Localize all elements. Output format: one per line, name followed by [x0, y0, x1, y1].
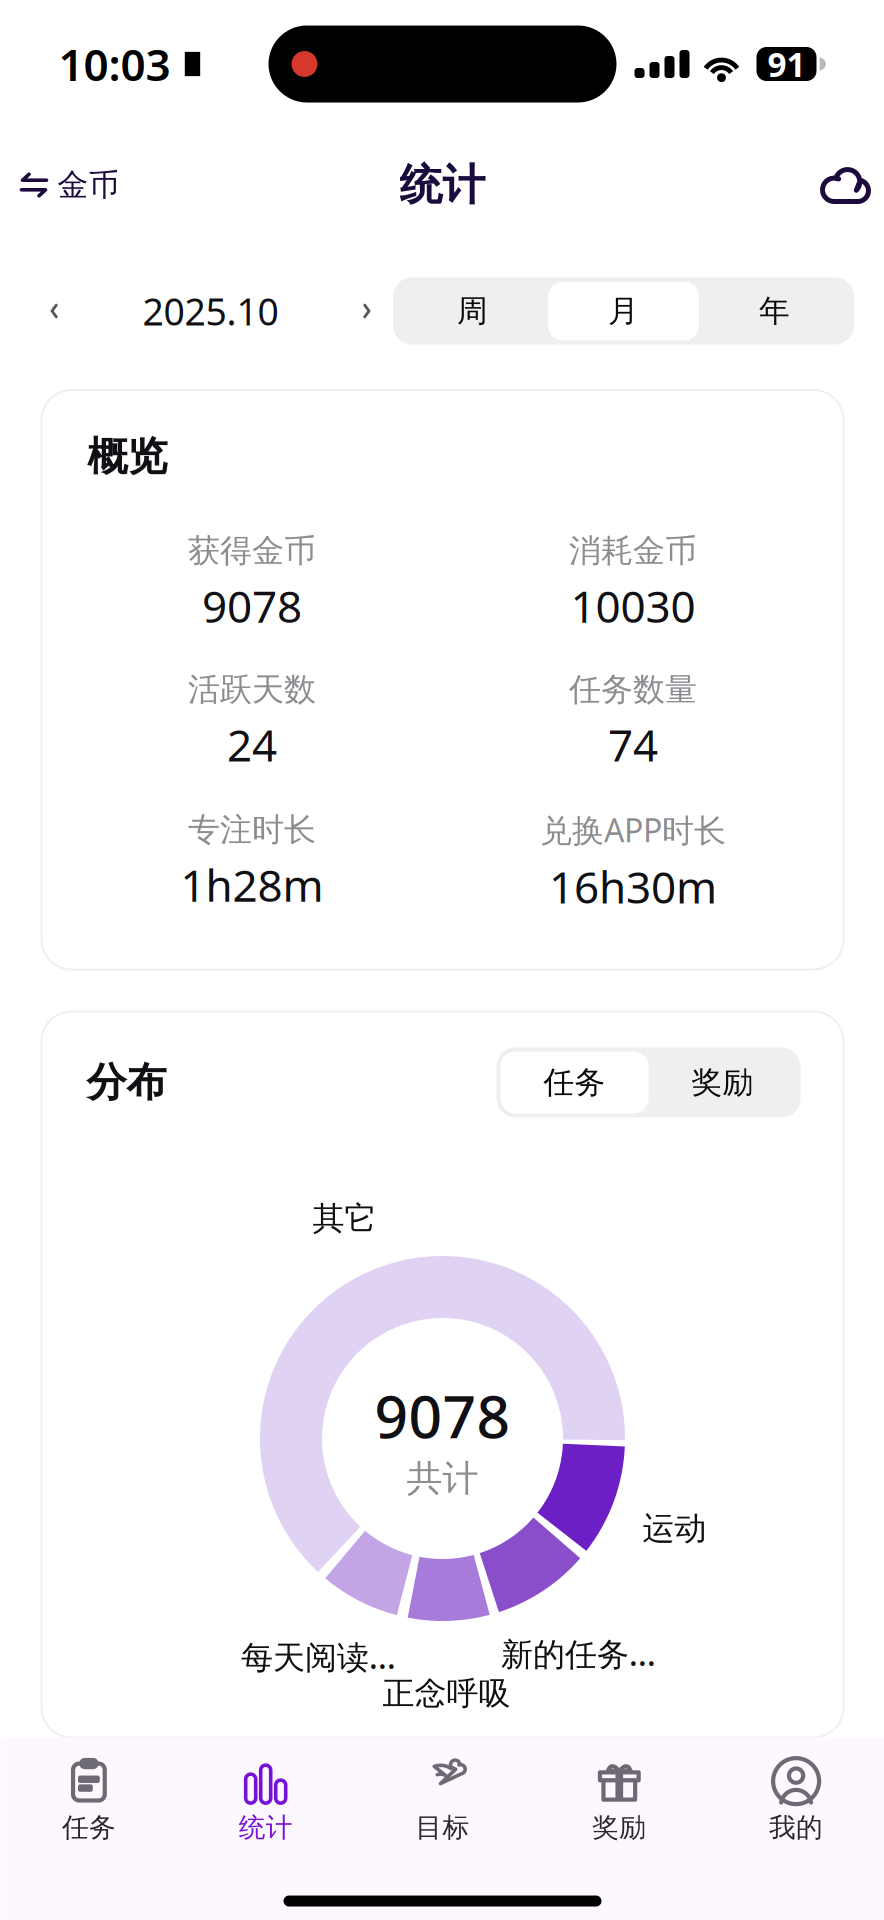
- staticText: 2025.10: [142, 286, 278, 336]
- staticText: 10030: [570, 576, 695, 635]
- staticText: 奖励: [592, 1811, 646, 1844]
- button[interactable]: 我的: [708, 1744, 884, 1844]
- staticText: 奖励: [691, 1064, 753, 1101]
- button[interactable]: 金币: [21, 166, 119, 204]
- staticText: 74: [608, 715, 658, 774]
- button[interactable]: 月: [548, 281, 699, 340]
- button[interactable]: 统计: [177, 1744, 354, 1844]
- staticText: 消耗金币: [569, 531, 697, 570]
- button[interactable]: Sync to cloud: [822, 166, 868, 204]
- staticText: 每天阅读...: [241, 1635, 396, 1678]
- staticText: 活跃天数: [188, 670, 316, 709]
- staticText: 统计: [239, 1811, 293, 1844]
- staticText: 专注时长: [188, 810, 316, 849]
- button[interactable]: 奖励: [648, 1051, 796, 1113]
- staticText: 正念呼吸: [382, 1674, 510, 1713]
- button[interactable]: 任务: [500, 1051, 648, 1113]
- staticText: 1h28m: [180, 855, 323, 914]
- staticText: 我的: [769, 1811, 823, 1844]
- staticText: 9078: [374, 1376, 510, 1454]
- staticText: 9078: [202, 576, 302, 635]
- button[interactable]: 周: [397, 281, 548, 340]
- staticText: 年: [759, 292, 790, 330]
- staticText: 运动: [642, 1509, 706, 1548]
- staticText: 统计: [399, 159, 485, 211]
- staticText: 周: [457, 292, 488, 330]
- staticText: 任务数量: [569, 670, 697, 709]
- button[interactable]: Previous month: [36, 292, 73, 330]
- button[interactable]: 奖励: [531, 1744, 708, 1844]
- button[interactable]: Next month: [348, 292, 385, 330]
- button[interactable]: 年: [699, 281, 850, 340]
- staticText: 任务: [62, 1811, 116, 1844]
- staticText: 16h30m: [549, 857, 717, 915]
- button[interactable]: 任务: [0, 1744, 177, 1844]
- staticText: 金币: [57, 166, 119, 204]
- staticText: 新的任务...: [501, 1632, 656, 1675]
- staticText: 任务: [543, 1064, 605, 1101]
- button[interactable]: 目标: [354, 1744, 531, 1844]
- staticText: 共计: [406, 1456, 478, 1501]
- staticText: 兑换APP时长: [540, 809, 726, 851]
- staticText: 10:03: [58, 35, 170, 93]
- staticText: 目标: [415, 1811, 469, 1844]
- staticText: 24: [227, 715, 277, 774]
- staticText: 91: [767, 42, 805, 86]
- staticText: 概览: [87, 432, 167, 481]
- staticText: 获得金币: [188, 531, 316, 570]
- staticText: 其它: [312, 1199, 376, 1238]
- staticText: 分布: [86, 1058, 166, 1107]
- staticText: 月: [608, 292, 639, 330]
